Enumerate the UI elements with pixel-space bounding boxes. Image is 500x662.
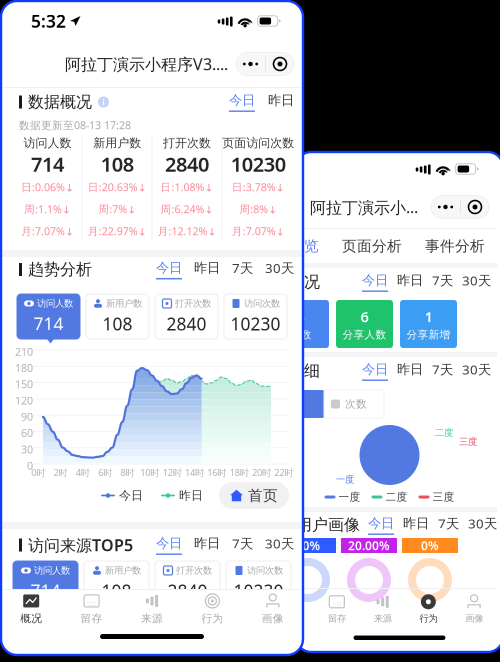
staticText: 7天 xyxy=(438,514,459,532)
button[interactable]: 留存 xyxy=(61,593,122,625)
button[interactable]: 更多 xyxy=(236,52,294,75)
button[interactable]: 来源 xyxy=(122,593,182,625)
staticText: 来源 xyxy=(141,612,163,625)
button[interactable]: 更多 xyxy=(431,195,489,218)
button[interactable]: 画像 xyxy=(243,593,303,625)
button[interactable]: 昨日 xyxy=(194,260,220,279)
button[interactable]: 首页 xyxy=(219,482,289,509)
staticText: 昨日 xyxy=(268,92,294,108)
staticText: 30天 xyxy=(462,360,491,378)
staticText: 况 xyxy=(304,272,320,292)
button[interactable]: 30天 xyxy=(265,534,294,556)
staticText: 12时 xyxy=(163,466,182,479)
staticText: 今日 xyxy=(368,515,394,531)
staticText: 今日 xyxy=(229,92,255,108)
staticText: 120 xyxy=(15,393,33,407)
button[interactable]: 来源 xyxy=(360,594,406,624)
staticText: 今日 xyxy=(362,361,388,377)
button[interactable]: 7天 xyxy=(232,534,253,556)
button[interactable]: 昨日 xyxy=(268,92,294,112)
staticText: 打开次数 xyxy=(175,298,211,309)
staticText: 30天 xyxy=(265,534,294,552)
button[interactable]: 访问次数 xyxy=(226,561,291,606)
staticText: 4时 xyxy=(76,466,90,479)
button[interactable]: 30天 xyxy=(468,514,497,536)
staticText: 一度 xyxy=(338,490,360,503)
button[interactable]: 今日 xyxy=(368,515,394,535)
button[interactable]: 7天 xyxy=(438,514,459,536)
button[interactable]: 画像 xyxy=(451,594,497,624)
staticText: 今日 xyxy=(156,260,182,276)
button[interactable]: 7天 xyxy=(232,259,253,280)
button[interactable]: 打开次数 xyxy=(155,294,218,339)
staticText: 1 xyxy=(424,307,432,326)
staticText: 昨日 xyxy=(194,535,220,551)
staticText: 打开次数 xyxy=(176,565,212,576)
staticText: 访问人数 xyxy=(34,565,70,576)
button[interactable]: 昨日 xyxy=(194,535,220,555)
staticText: 月:7.07%↓ xyxy=(21,224,74,238)
button[interactable]: 留存 xyxy=(314,594,360,624)
button[interactable]: 今日 xyxy=(156,535,182,555)
staticText: 日:1.08%↓ xyxy=(160,180,213,194)
button[interactable]: 新用户数 xyxy=(84,561,149,606)
button[interactable]: 30天 xyxy=(462,271,491,293)
staticText: 108 xyxy=(101,151,134,177)
staticText: 昨日 xyxy=(179,488,203,503)
button[interactable]: 访问人数 xyxy=(13,561,78,606)
staticText: 首页 xyxy=(248,486,278,504)
staticText: 0 xyxy=(27,458,33,473)
staticText: 三度 xyxy=(432,490,454,503)
button[interactable]: 7天 xyxy=(432,360,453,382)
staticText: 22时 xyxy=(274,466,293,479)
button[interactable]: 昨日 xyxy=(403,515,429,535)
staticText: 数据更新至08-13 17:28 xyxy=(19,118,131,132)
staticText: 714 xyxy=(33,312,63,335)
staticText: 714 xyxy=(31,151,64,177)
staticText: 访问次数 xyxy=(247,565,283,576)
staticText: 周:1.1%↓ xyxy=(24,202,71,216)
button[interactable]: 今日 xyxy=(362,361,388,381)
staticText: 6 xyxy=(360,307,368,326)
staticText: 昨日 xyxy=(397,272,423,288)
button[interactable]: 行为 xyxy=(405,594,451,624)
staticText: 月:7.07%↓ xyxy=(232,224,285,238)
staticText: 5:32 xyxy=(31,9,66,32)
staticText: 行为 xyxy=(201,612,223,625)
button[interactable]: 打开次数 xyxy=(155,561,220,606)
button[interactable]: 访问次数 xyxy=(224,294,287,339)
staticText: 90 xyxy=(21,410,33,424)
staticText: 6时 xyxy=(98,466,112,479)
staticText: 8时 xyxy=(120,466,134,479)
staticText: 30天 xyxy=(462,271,491,289)
staticText: 留存 xyxy=(328,613,346,624)
staticText: 访问人数 xyxy=(23,136,71,150)
staticText: 阿拉丁演示小程序V3.... xyxy=(65,53,228,75)
button[interactable]: 今日 xyxy=(229,92,255,112)
staticText: 180 xyxy=(15,361,33,375)
button[interactable]: 访问人数 xyxy=(17,294,80,339)
staticText: 览 xyxy=(304,237,319,255)
staticText: 页面分析 xyxy=(342,237,402,255)
button[interactable]: 行为 xyxy=(182,593,243,625)
button[interactable]: 今日 xyxy=(362,272,388,292)
staticText: 访问次数 xyxy=(244,298,280,309)
button[interactable]: 昨日 xyxy=(397,361,423,381)
staticText: 0% xyxy=(421,537,439,553)
staticText: 留存 xyxy=(81,612,103,625)
button[interactable]: 7天 xyxy=(432,271,453,293)
button[interactable]: 30天 xyxy=(265,259,294,280)
staticText: 昨日 xyxy=(403,515,429,531)
button[interactable]: 今日 xyxy=(156,260,182,279)
staticText: 二度 xyxy=(385,490,407,503)
button[interactable]: 30天 xyxy=(462,360,491,382)
button[interactable]: 昨日 xyxy=(397,272,423,292)
staticText: 30 xyxy=(21,442,33,456)
staticText: 2时 xyxy=(53,466,67,479)
button[interactable]: 概况 xyxy=(1,593,61,625)
button[interactable]: 新用户数 xyxy=(86,294,149,339)
staticText: 新用户数 xyxy=(106,298,142,309)
staticText: 今日 xyxy=(156,535,182,551)
staticText: 210 xyxy=(15,344,33,359)
staticText: 20时 xyxy=(252,466,271,479)
